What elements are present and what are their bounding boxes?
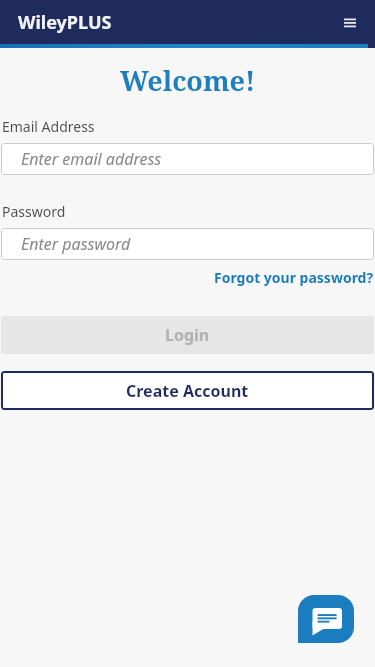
button[interactable]: Enter password	[1, 228, 374, 260]
button[interactable]: Login	[1, 316, 374, 354]
button[interactable]: Forgot your password?	[214, 268, 374, 287]
staticText: Login	[165, 324, 210, 346]
staticText: Welcome!	[120, 62, 256, 99]
button[interactable]	[340, 14, 360, 32]
button[interactable]	[298, 595, 354, 643]
staticText: Create Account	[126, 380, 249, 402]
button[interactable]: Create Account	[1, 371, 374, 410]
staticText: Enter email address	[21, 148, 162, 170]
button[interactable]: Enter email address	[1, 143, 374, 175]
staticText: Password	[2, 202, 66, 221]
staticText: Email Address	[2, 117, 95, 136]
staticText: Enter password	[21, 233, 131, 255]
staticText: WileyPLUS	[18, 10, 112, 35]
